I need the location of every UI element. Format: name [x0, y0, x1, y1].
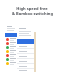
staticText: & Bamboo switching	[12, 11, 53, 16]
staticText: High speed free	[16, 6, 48, 11]
